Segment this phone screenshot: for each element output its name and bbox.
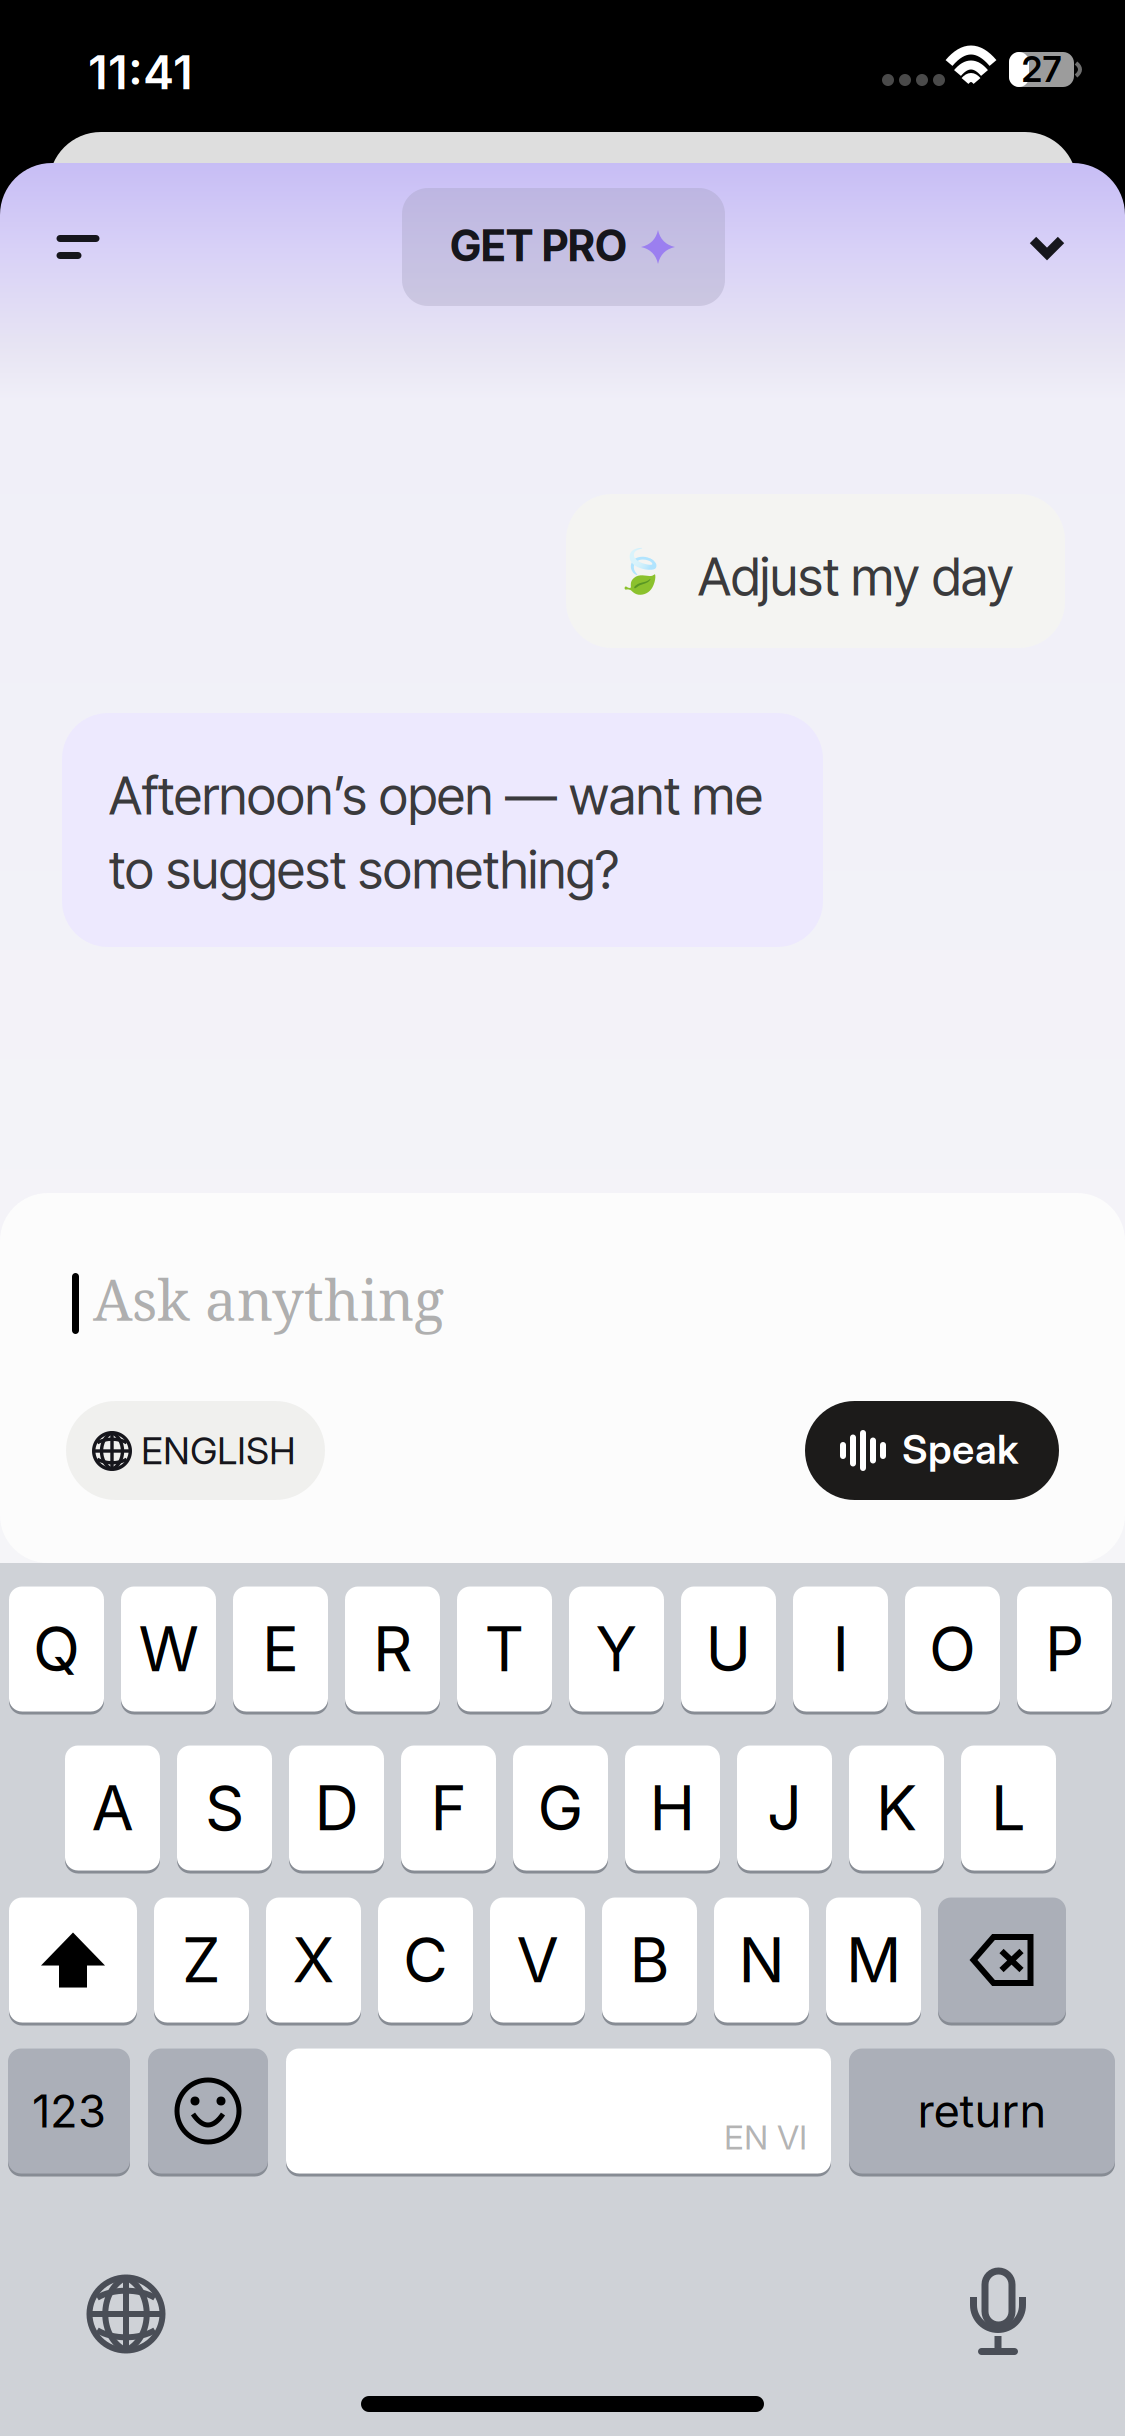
staticText: Q (33, 1612, 80, 1686)
staticText: D (314, 1771, 358, 1845)
staticText: U (705, 1612, 751, 1686)
button[interactable]: return (849, 2047, 1115, 2175)
button[interactable]: J (737, 1744, 832, 1872)
button[interactable]: Collapse (997, 188, 1097, 306)
button[interactable]: Q (9, 1585, 104, 1713)
staticText: Adjust my day (698, 545, 1014, 608)
button[interactable]: N (714, 1896, 809, 2024)
button[interactable]: Switch keyboard (66, 2254, 186, 2374)
button[interactable]: M (826, 1896, 921, 2024)
button[interactable]: C (378, 1896, 473, 2024)
staticText: B (629, 1923, 669, 1997)
staticText: I (832, 1612, 848, 1686)
button[interactable]: A (65, 1744, 160, 1872)
button[interactable]: K (849, 1744, 944, 1872)
staticText: Ask anything (93, 1261, 444, 1337)
button[interactable]: W (121, 1585, 216, 1713)
button[interactable]: Delete (938, 1896, 1066, 2024)
staticText: M (846, 1923, 901, 1997)
staticText: S (205, 1771, 244, 1845)
staticText: R (373, 1612, 412, 1686)
button[interactable]: ENGLISH (66, 1401, 325, 1500)
button[interactable]: Speak (805, 1401, 1059, 1500)
staticText: L (991, 1771, 1026, 1845)
staticText: to suggest something? (109, 838, 619, 901)
button[interactable]: T (457, 1585, 552, 1713)
staticText: 🍃 (614, 546, 667, 596)
button[interactable]: U (681, 1585, 776, 1713)
staticText: J (767, 1771, 802, 1845)
staticText: W (138, 1612, 198, 1686)
staticText: X (292, 1923, 334, 1997)
staticText: P (1045, 1612, 1084, 1686)
button[interactable]: S (177, 1744, 272, 1872)
button[interactable]: G (513, 1744, 608, 1872)
staticText: 27 (1021, 48, 1061, 90)
staticText: Speak (902, 1425, 1019, 1473)
button[interactable]: I (793, 1585, 888, 1713)
button[interactable]: E (233, 1585, 328, 1713)
staticText: ENGLISH (141, 1428, 296, 1473)
staticText: K (876, 1771, 917, 1845)
staticText: F (430, 1771, 466, 1845)
staticText: A (91, 1771, 133, 1845)
staticText: Y (595, 1612, 637, 1686)
button[interactable]: Dictate (938, 2253, 1058, 2373)
staticText: V (516, 1923, 558, 1997)
button[interactable]: X (266, 1896, 361, 2024)
staticText: N (738, 1923, 784, 1997)
button[interactable]: Space (286, 2047, 831, 2175)
staticText: EN VI (724, 2117, 807, 2157)
staticText: C (403, 1923, 448, 1997)
staticText: E (262, 1612, 299, 1686)
staticText: O (929, 1612, 976, 1686)
button[interactable]: F (401, 1744, 496, 1872)
staticText: 123 (32, 2084, 106, 2138)
button[interactable]: R (345, 1585, 440, 1713)
button[interactable]: D (289, 1744, 384, 1872)
button[interactable]: O (905, 1585, 1000, 1713)
staticText: Z (182, 1923, 221, 1997)
staticText: T (484, 1612, 524, 1686)
staticText: return (917, 2084, 1046, 2138)
staticText: G (537, 1771, 583, 1845)
button[interactable]: P (1017, 1585, 1112, 1713)
staticText: Afternoon’s open — want me (109, 764, 763, 827)
staticText: H (649, 1771, 695, 1845)
button[interactable]: Z (154, 1896, 249, 2024)
button[interactable]: Y (569, 1585, 664, 1713)
button[interactable]: Menu (28, 188, 128, 306)
button[interactable]: GET PRO (402, 188, 725, 306)
button[interactable]: V (490, 1896, 585, 2024)
button[interactable]: L (961, 1744, 1056, 1872)
staticText: 11:41 (88, 44, 193, 100)
button[interactable]: Shift (9, 1896, 137, 2024)
button[interactable]: Emoji keyboard (148, 2047, 268, 2175)
button[interactable]: H (625, 1744, 720, 1872)
staticText: GET PRO (450, 220, 627, 272)
button[interactable]: 123 (8, 2047, 130, 2175)
button[interactable]: B (602, 1896, 697, 2024)
